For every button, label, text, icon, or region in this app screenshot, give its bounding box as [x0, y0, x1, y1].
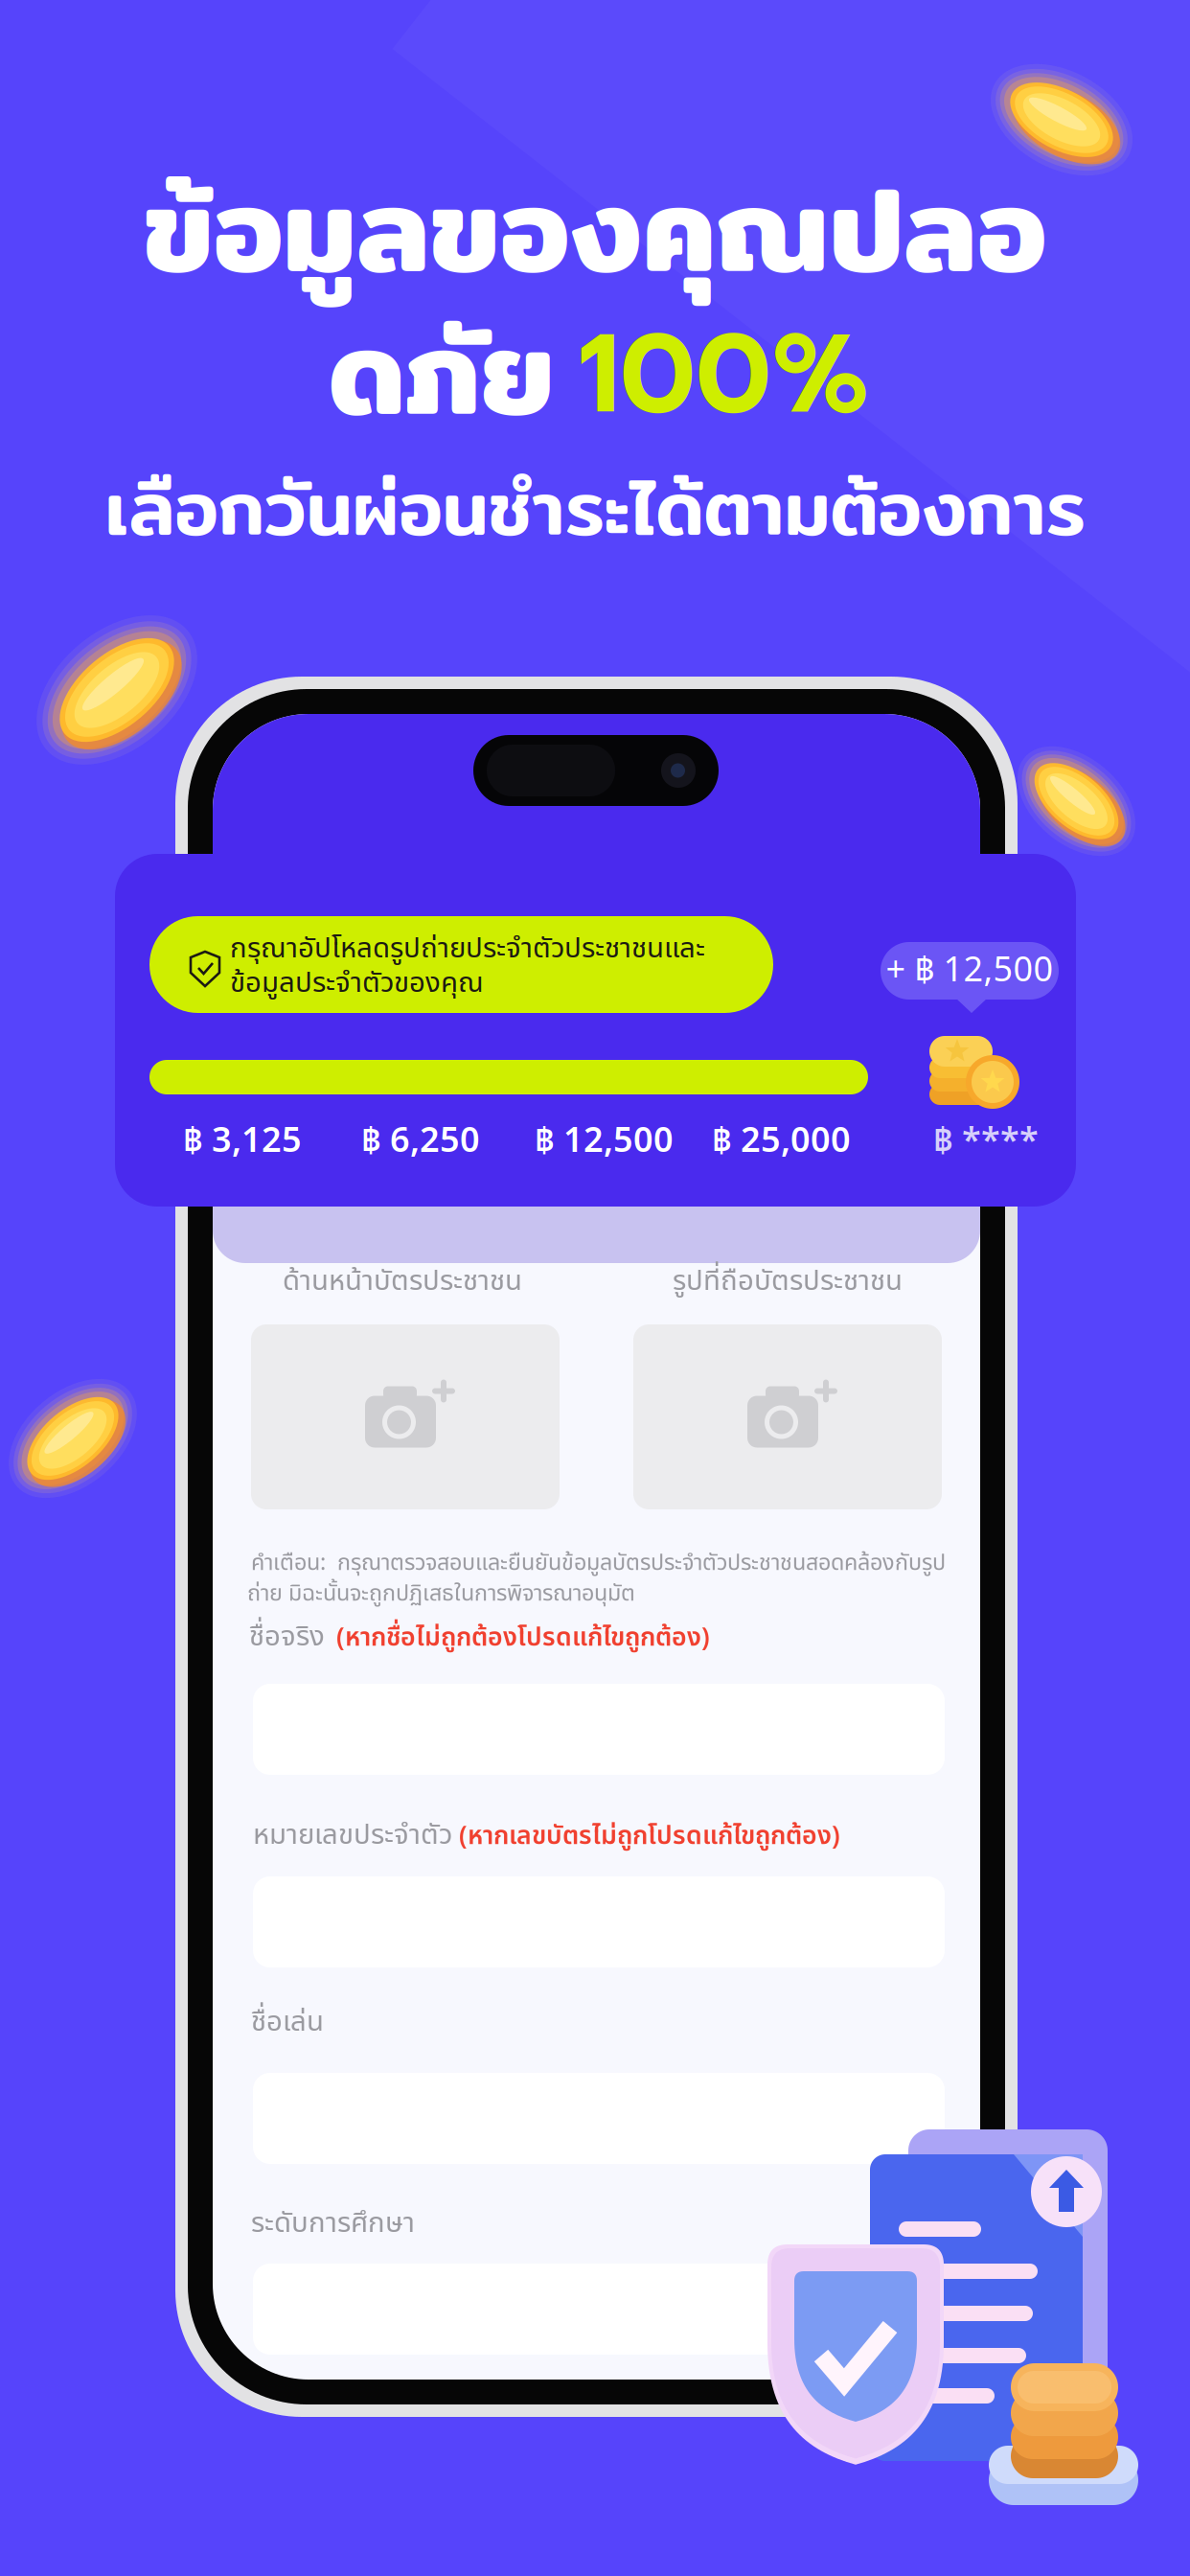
staticText: กรุณาอัปโหลดรูปถ่ายประจำตัวประชาชนและ [230, 927, 705, 970]
button[interactable]: Nickname field [253, 2073, 945, 2164]
staticText: ดภัย [329, 279, 555, 463]
staticText: ระดับการศึกษา [251, 2202, 415, 2245]
staticText: เลือกวันผ่อนชำระได้ตามต้องการ [105, 450, 1085, 566]
staticText: ด้านหน้าบัตรประชาชน [283, 1260, 522, 1302]
staticText: ข้อมูลประจำตัวของคุณ [230, 962, 484, 1004]
staticText: ฿ **** [933, 1115, 1039, 1167]
staticText: ฿ 25,000 [712, 1115, 851, 1167]
staticText: ชื่อจริง [249, 1616, 325, 1658]
staticText: ฿ 12,500 [535, 1115, 674, 1167]
staticText: คำเตือน: กรุณาตรวจสอบและยืนยันข้อมูลบัตร… [251, 1546, 946, 1580]
staticText: 100% [578, 292, 869, 458]
staticText: รูปที่ถือบัตรประชาชน [673, 1260, 903, 1302]
staticText: ฿ 3,125 [183, 1115, 302, 1167]
button[interactable]: Education level field [253, 2264, 945, 2355]
staticText: + ฿ 12,500 [886, 945, 1053, 997]
staticText: ฿ 6,250 [361, 1115, 480, 1167]
staticText: (หากเลขบัตรไม่ถูกโปรดแก้ไขถูกต้อง) [459, 1817, 840, 1856]
staticText: ชื่อเล่น [251, 2001, 324, 2043]
button[interactable]: Upload front of ID card [251, 1324, 560, 1509]
staticText: (หากชื่อไม่ถูกต้องโปรดแก้ไขถูกต้อง) [336, 1619, 710, 1657]
staticText: ถ่าย มิฉะนั้นจะถูกปฏิเสธในการพิจารณาอนุม… [247, 1577, 635, 1611]
staticText: หมายเลขประจำตัว [253, 1814, 452, 1856]
staticText: ข้อมูลของคุณปลอ [144, 136, 1046, 320]
button[interactable]: Upload selfie holding ID card [633, 1324, 942, 1509]
